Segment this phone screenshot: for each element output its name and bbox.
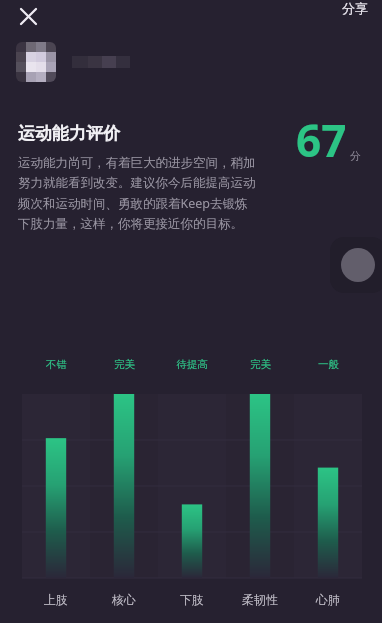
staticText: 运动能力评价 — [18, 123, 120, 144]
staticText: 分 — [350, 149, 361, 163]
staticText: 心肺 — [316, 592, 340, 607]
staticText: 不错 — [46, 358, 67, 371]
button[interactable]: 上肢 — [22, 592, 90, 607]
staticText: 下肢 — [180, 592, 204, 607]
staticText: 运动能力尚可，有着巨大的进步空间，稍加 — [18, 155, 256, 171]
button[interactable]: 核心 — [90, 592, 158, 607]
staticText: 柔韧性 — [242, 592, 278, 607]
staticText: 一般 — [318, 358, 339, 371]
button[interactable]: 下肢 — [158, 592, 226, 607]
button[interactable]: 柔韧性 — [226, 592, 294, 607]
staticText: 上肢 — [44, 592, 68, 607]
button[interactable]: 心肺 — [294, 592, 362, 607]
staticText: 频次和运动时间、勇敢的跟着Keep去锻炼 — [18, 195, 248, 212]
button[interactable]: Close — [6, 0, 50, 38]
staticText: 67 — [296, 110, 347, 170]
staticText: 完美 — [114, 358, 135, 371]
staticText: 分享 — [342, 0, 368, 16]
staticText: 待提高 — [176, 358, 208, 371]
button[interactable]: 分享 — [328, 0, 382, 24]
staticText: 努力就能看到改变。建议你今后能提高运动 — [18, 175, 256, 191]
staticText: 下肢力量，这样，你将更接近你的目标。 — [18, 216, 243, 232]
staticText: 核心 — [112, 592, 136, 607]
staticText: 完美 — [250, 358, 271, 371]
button[interactable]: Badge — [330, 237, 382, 293]
